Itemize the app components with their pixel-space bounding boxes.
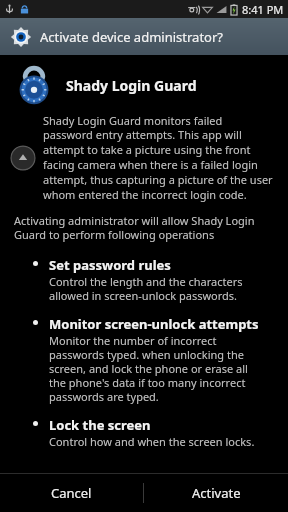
staticText: Cancel [51,484,92,502]
staticText: Lock the screen [49,416,151,434]
staticText: Monitor screen-unlock attempts [49,315,259,333]
staticText: Shady Login Guard monitors failed passwo… [43,113,273,203]
staticText: Control the length and the characters al… [49,274,243,303]
staticText: Control how and when the screen locks. [49,434,255,449]
button[interactable]: Collapse description [10,145,36,171]
staticText: Monitor the number of incorrect password… [49,333,248,404]
staticText: Activating administrator will allow Shad… [14,213,255,242]
button[interactable]: Activate [144,474,288,512]
staticText: Activate device administrator? [40,28,223,46]
staticText: Set password rules [49,256,171,274]
staticText: Activate [192,484,241,502]
staticText: 8:41 PM [242,2,284,17]
staticText: Shady Login Guard [66,76,197,95]
button[interactable]: Cancel [0,474,143,512]
